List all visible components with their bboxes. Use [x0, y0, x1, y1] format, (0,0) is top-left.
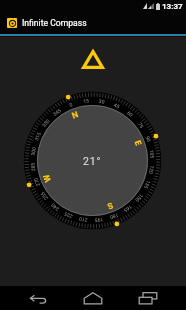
button[interactable]: Back [24, 286, 52, 310]
staticText: Infinite Compass [22, 18, 87, 28]
button[interactable]: Recent apps [134, 286, 162, 310]
button[interactable]: Home [79, 286, 107, 310]
button[interactable]: Infinite Compass [7, 18, 17, 28]
staticText: 13:37 [162, 2, 183, 11]
